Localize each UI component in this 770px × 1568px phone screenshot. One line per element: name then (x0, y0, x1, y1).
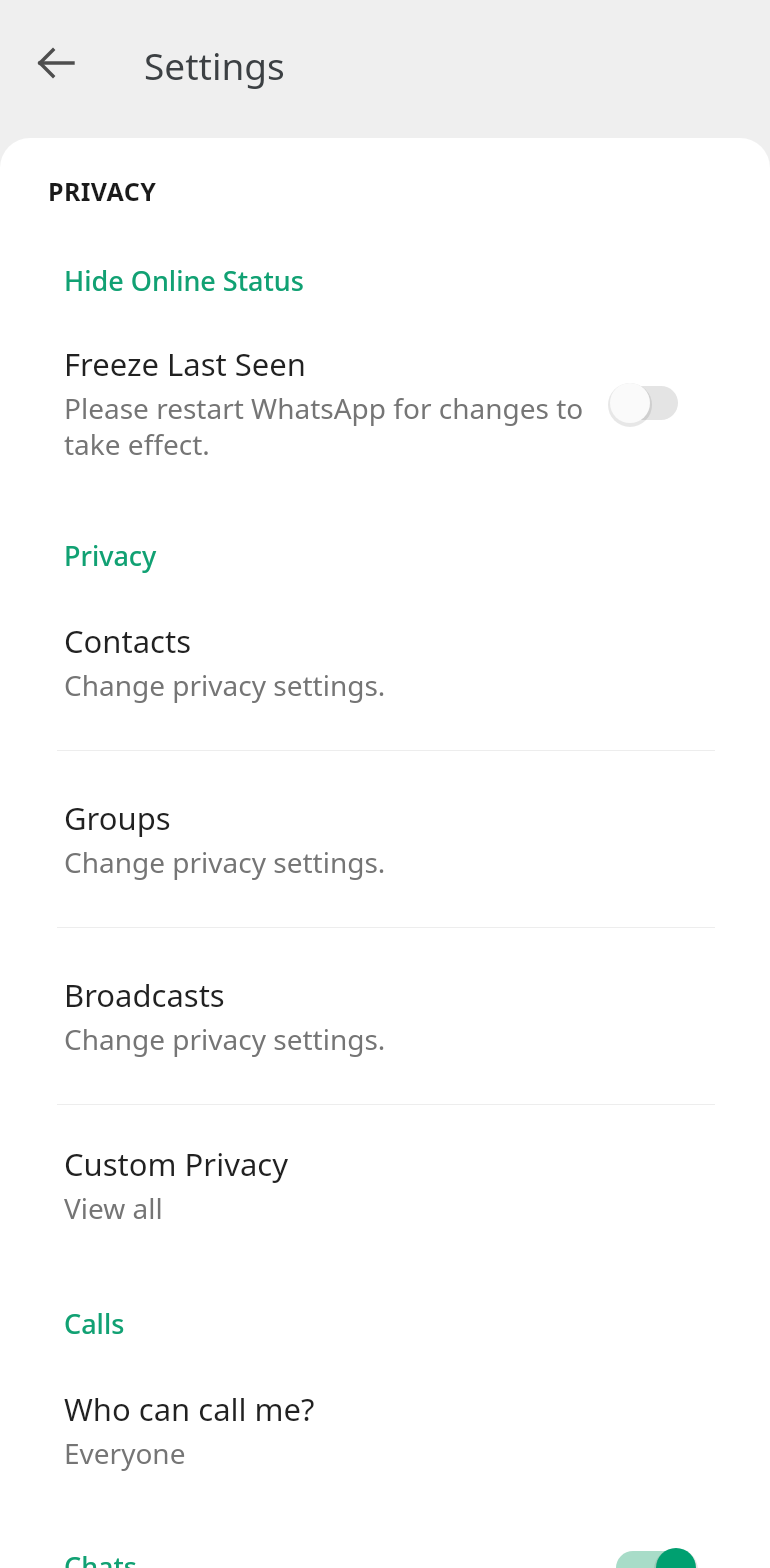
staticText: PRIVACY (48, 174, 157, 208)
staticText: Everyone (64, 1434, 186, 1472)
staticText: Contacts (64, 620, 192, 662)
button[interactable]: Broadcasts (0, 974, 770, 1058)
staticText: Hide Online Status (64, 262, 304, 299)
staticText: Broadcasts (64, 974, 225, 1016)
staticText: Groups (64, 797, 171, 839)
staticText: Privacy (64, 537, 157, 574)
staticText: Who can call me? (64, 1388, 315, 1430)
button[interactable]: Custom Privacy (0, 1143, 770, 1227)
staticText: Settings (144, 40, 285, 90)
staticText: Calls (64, 1305, 125, 1342)
staticText: Chats (64, 1548, 137, 1568)
staticText: Change privacy settings. (64, 1020, 386, 1058)
staticText: View all (64, 1189, 163, 1227)
staticText: Change privacy settings. (64, 843, 386, 881)
button[interactable]: Who can call me? (0, 1388, 770, 1472)
button[interactable]: Toggle off (604, 373, 696, 433)
button[interactable]: Freeze Last Seen (0, 343, 770, 463)
staticText: Please restart WhatsApp for changes to t… (64, 389, 584, 463)
button[interactable]: Back (28, 35, 84, 91)
staticText: Freeze Last Seen (64, 343, 306, 385)
button[interactable]: Contacts (0, 620, 770, 704)
button[interactable]: Groups (0, 797, 770, 881)
staticText: Custom Privacy (64, 1143, 288, 1185)
staticText: Change privacy settings. (64, 666, 386, 704)
